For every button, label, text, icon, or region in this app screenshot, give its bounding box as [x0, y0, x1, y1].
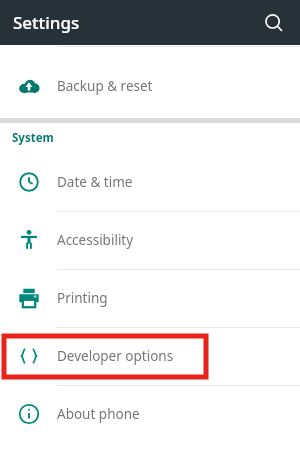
staticText: Backup & reset	[57, 77, 153, 95]
staticText: About phone	[57, 405, 140, 423]
staticText: Developer options	[57, 347, 174, 365]
button[interactable]: Backup & reset	[0, 57, 300, 115]
staticText: System	[12, 130, 54, 146]
button[interactable]: Accessibility	[0, 211, 300, 269]
button[interactable]: Printing	[0, 269, 300, 327]
button[interactable]: About phone	[0, 385, 300, 443]
button[interactable]: Search	[256, 5, 292, 41]
button[interactable]: Date & time	[0, 153, 300, 211]
button[interactable]: Developer options	[0, 327, 300, 385]
staticText: Printing	[57, 289, 108, 307]
staticText: Date & time	[57, 173, 133, 191]
staticText: Settings	[13, 11, 80, 34]
staticText: Accessibility	[57, 231, 134, 249]
